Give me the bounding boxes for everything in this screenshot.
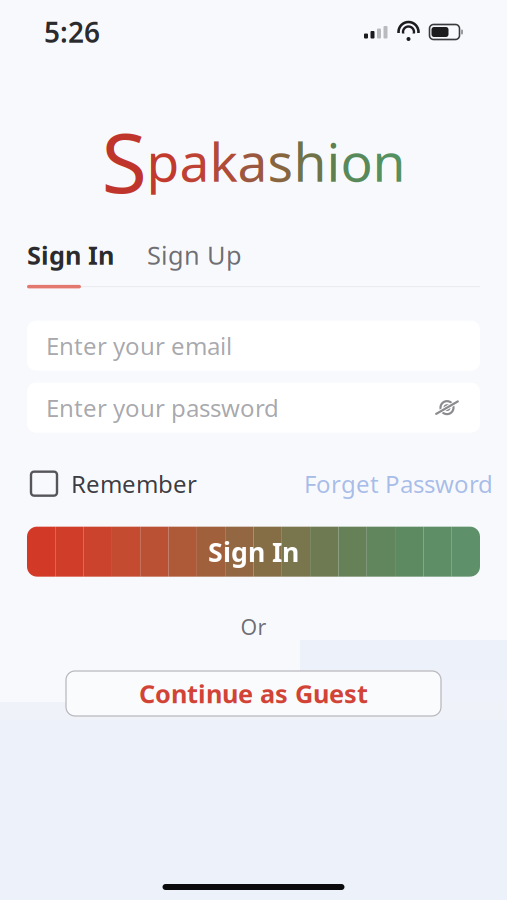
staticText: Sign Up	[147, 238, 242, 272]
staticText: n	[372, 125, 405, 197]
button[interactable]: Enter your email	[27, 321, 480, 371]
button[interactable]: Sign In	[27, 527, 480, 577]
staticText: Forget Password	[304, 468, 493, 500]
button[interactable]: Remember	[31, 468, 197, 500]
staticText: a	[179, 125, 209, 197]
staticText: Remember	[71, 468, 197, 500]
staticText: i	[326, 125, 340, 197]
staticText: Continue as Guest	[139, 677, 368, 710]
staticText: Enter your email	[46, 330, 232, 362]
staticText: k	[209, 125, 237, 197]
staticText: a	[237, 125, 267, 197]
staticText: Or	[240, 613, 266, 641]
staticText: Enter your password	[46, 392, 279, 424]
staticText: o	[340, 125, 372, 197]
staticText: 5:26	[44, 13, 100, 51]
staticText: Sign In	[27, 238, 114, 272]
button[interactable]: Forget Password	[304, 468, 493, 500]
staticText: h	[293, 125, 326, 197]
staticText: S	[101, 105, 146, 217]
button[interactable]: Sign Up	[147, 238, 242, 272]
button[interactable]: Enter your password	[27, 383, 480, 433]
staticText: Sign In	[208, 534, 299, 569]
staticText: s	[267, 125, 293, 197]
staticText: p	[146, 125, 179, 197]
button[interactable]: Sign In	[27, 238, 114, 272]
button[interactable]: Continue as Guest	[66, 671, 441, 716]
